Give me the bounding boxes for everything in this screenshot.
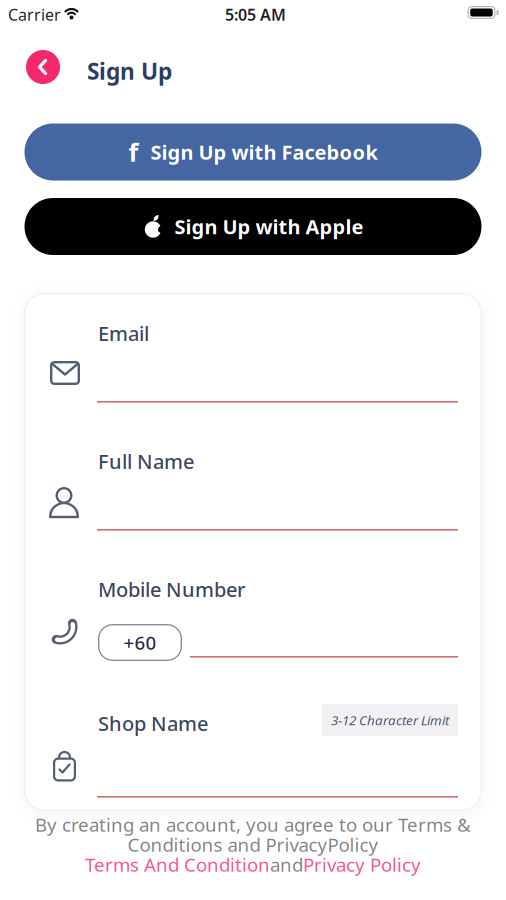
- staticText: 5:05 AM: [225, 4, 286, 25]
- staticText: f: [128, 135, 138, 169]
- button[interactable]: f: [24, 123, 481, 180]
- button[interactable]: Sign Up with Apple: [24, 198, 481, 255]
- staticText: Mobile Number: [98, 576, 245, 603]
- button[interactable]: Back: [26, 50, 60, 84]
- staticText: Privacy Policy: [303, 852, 421, 877]
- staticText: Terms And Condition: [85, 852, 270, 877]
- staticText: 3-12 Character Limit: [331, 711, 449, 729]
- staticText: By creating an account, you agree to our…: [35, 812, 471, 837]
- staticText: Sign Up with Facebook: [150, 139, 377, 165]
- staticText: Sign Up: [87, 56, 172, 86]
- staticText: Shop Name: [98, 710, 208, 737]
- staticText: +60: [123, 630, 156, 655]
- staticText: Carrier: [8, 4, 61, 25]
- staticText: Email: [98, 320, 149, 347]
- staticText: Conditions and PrivacyPolicy: [127, 832, 378, 857]
- staticText: Sign Up with Apple: [174, 213, 363, 240]
- button[interactable]: Terms And Condition: [85, 852, 270, 877]
- staticText: Full Name: [98, 448, 194, 475]
- button[interactable]: Privacy Policy: [303, 852, 421, 877]
- staticText: and: [270, 852, 303, 877]
